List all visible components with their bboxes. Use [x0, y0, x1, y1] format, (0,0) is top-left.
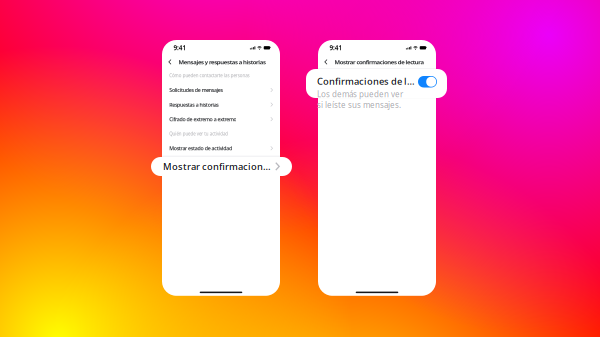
button[interactable]: Back — [183, 93, 217, 133]
staticText: 9:41 — [356, 52, 398, 80]
staticText: Mensajes y respuestas a historias — [217, 100, 508, 126]
button[interactable]: Mostrar confirmaciones de lectura — [151, 157, 292, 176]
button[interactable]: Back — [339, 93, 373, 133]
staticText: Cómo pueden contactarte las personas — [186, 148, 454, 168]
staticText: 9:41 — [200, 52, 242, 80]
button[interactable]: Respuestas a historias — [162, 231, 555, 279]
staticText: Respuestas a historias — [186, 244, 351, 267]
staticText: Mostrar confirmaciones de lectura — [163, 160, 271, 173]
button[interactable]: Confirmaciones de lectura — [418, 76, 437, 87]
staticText: Confirmaciones de lectura — [317, 75, 415, 87]
staticText: Mostrar confirmaciones de lectura — [373, 100, 600, 126]
button[interactable]: Solicitudes de mensajes — [162, 182, 555, 231]
button[interactable]: Cifrado de extremo a extremo — [162, 279, 555, 328]
staticText: Cifrado de extremo a extremo — [186, 292, 411, 315]
staticText: Solicitudes de mensajes — [186, 195, 365, 218]
staticText: Los demás pueden ver si leíste sus mensa… — [317, 89, 403, 110]
